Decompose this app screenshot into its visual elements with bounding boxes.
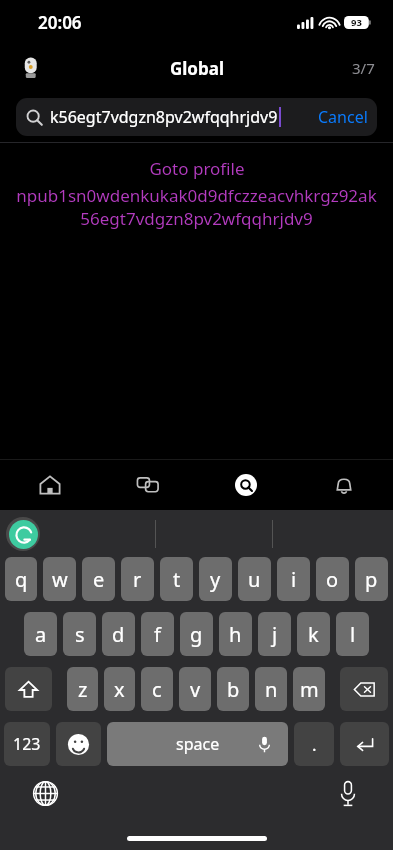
staticText: . bbox=[312, 733, 317, 756]
staticText: 93 bbox=[351, 16, 362, 29]
staticText: i bbox=[291, 566, 297, 593]
button[interactable]: Goto profile bbox=[14, 157, 379, 459]
staticText: z bbox=[78, 676, 88, 703]
button[interactable]: r bbox=[121, 557, 154, 601]
button[interactable]: a bbox=[24, 612, 57, 656]
button[interactable]: Cancel bbox=[309, 98, 377, 136]
staticText: t bbox=[173, 566, 181, 593]
button[interactable]: k56egt7vdgzn8pv2wfqqhrjdv9 bbox=[50, 106, 309, 128]
button[interactable]: u bbox=[238, 557, 271, 601]
staticText: 123 bbox=[13, 733, 41, 755]
button[interactable]: d bbox=[102, 612, 135, 656]
staticText: w bbox=[52, 566, 68, 593]
button[interactable]: Emoji bbox=[56, 722, 101, 766]
button[interactable]: l bbox=[336, 612, 369, 656]
button[interactable]: s bbox=[63, 612, 96, 656]
button[interactable]: h bbox=[219, 612, 252, 656]
button[interactable]: Grammarly bbox=[6, 517, 40, 551]
button[interactable]: c bbox=[141, 667, 173, 711]
button[interactable]: z bbox=[67, 667, 98, 711]
button[interactable]: o bbox=[316, 557, 349, 601]
button[interactable]: 3/7 bbox=[352, 58, 375, 78]
button[interactable]: i bbox=[277, 557, 310, 601]
staticText: Global bbox=[170, 57, 224, 80]
staticText: d bbox=[112, 621, 125, 648]
button[interactable]: Messages bbox=[99, 460, 197, 510]
button[interactable]: n bbox=[255, 667, 287, 711]
staticText: m bbox=[300, 676, 319, 703]
button[interactable]: Dictation bbox=[333, 778, 363, 808]
staticText: r bbox=[133, 566, 142, 593]
button[interactable]: g bbox=[180, 612, 213, 656]
staticText: x bbox=[114, 676, 125, 703]
button[interactable]: v bbox=[179, 667, 211, 711]
staticText: e bbox=[93, 566, 105, 593]
staticText: b bbox=[227, 676, 240, 703]
button[interactable]: m bbox=[293, 667, 325, 711]
button[interactable]: 123 bbox=[4, 722, 50, 766]
staticText: l bbox=[350, 621, 356, 648]
button[interactable]: t bbox=[160, 557, 193, 601]
button[interactable]: j bbox=[258, 612, 291, 656]
button[interactable]: Search bbox=[197, 460, 295, 510]
staticText: k bbox=[308, 621, 319, 648]
button[interactable]: w bbox=[43, 557, 76, 601]
staticText: Cancel bbox=[318, 106, 368, 128]
staticText: k56egt7vdgzn8pv2wfqqhrjdv9 bbox=[50, 106, 278, 128]
button[interactable]: y bbox=[199, 557, 232, 601]
button[interactable]: b bbox=[217, 667, 249, 711]
staticText: f bbox=[154, 621, 161, 648]
staticText: n bbox=[265, 676, 278, 703]
staticText: q bbox=[15, 566, 28, 593]
staticText: u bbox=[248, 566, 261, 593]
button[interactable]: Change keyboard bbox=[30, 778, 60, 808]
staticText: a bbox=[35, 621, 47, 648]
staticText: Goto profile bbox=[149, 157, 245, 180]
button[interactable]: . bbox=[294, 722, 334, 766]
staticText: g bbox=[190, 621, 203, 648]
staticText: npub1sn0wdenkukak0d9dfczzeacvhkrgz92ak56… bbox=[14, 184, 379, 230]
button[interactable]: Return bbox=[340, 722, 389, 766]
staticText: 20:06 bbox=[38, 11, 82, 34]
staticText: v bbox=[190, 676, 201, 703]
button[interactable]: space bbox=[107, 722, 288, 766]
button[interactable]: x bbox=[104, 667, 135, 711]
button[interactable]: k bbox=[297, 612, 330, 656]
button[interactable]: Backspace bbox=[340, 667, 388, 711]
staticText: s bbox=[75, 621, 85, 648]
button[interactable]: q bbox=[5, 557, 37, 601]
button[interactable]: Shift bbox=[5, 667, 52, 711]
button[interactable]: Notifications bbox=[295, 460, 393, 510]
staticText: o bbox=[326, 566, 339, 593]
button[interactable]: f bbox=[141, 612, 174, 656]
button[interactable]: Profile bbox=[16, 53, 46, 83]
staticText: j bbox=[272, 621, 278, 648]
button[interactable]: p bbox=[355, 557, 388, 601]
staticText: y bbox=[210, 566, 221, 593]
staticText: h bbox=[229, 621, 242, 648]
button[interactable]: Home bbox=[0, 460, 99, 510]
staticText: c bbox=[152, 676, 162, 703]
staticText: space bbox=[176, 733, 220, 755]
staticText: p bbox=[365, 566, 378, 593]
button[interactable]: e bbox=[82, 557, 115, 601]
